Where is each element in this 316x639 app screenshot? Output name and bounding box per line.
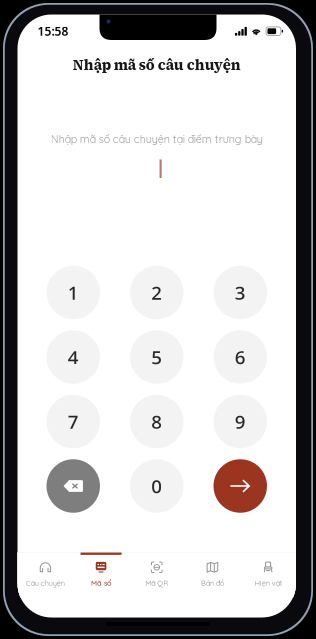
button[interactable]: 5: [130, 330, 183, 384]
button[interactable]: Hiện vật: [240, 552, 296, 597]
staticText: 1: [68, 280, 79, 305]
staticText: 0: [151, 473, 162, 499]
staticText: 2: [151, 280, 162, 305]
staticText: 5: [151, 344, 162, 370]
staticText: 9: [235, 409, 246, 434]
staticText: Mã số: [91, 578, 111, 588]
staticText: Nhập mã số câu chuyện tại điểm trưng bày: [51, 132, 263, 146]
button[interactable]: Xoá: [46, 459, 100, 513]
staticText: Hiện vật: [255, 578, 282, 588]
button[interactable]: 1: [46, 266, 100, 319]
button[interactable]: 6: [213, 330, 267, 384]
button[interactable]: Mã số: [73, 552, 129, 597]
staticText: 8: [151, 409, 162, 434]
staticText: Nhập mã số câu chuyện: [73, 55, 241, 75]
button[interactable]: 7: [46, 395, 100, 448]
staticText: 4: [68, 344, 79, 370]
button[interactable]: 4: [46, 330, 100, 384]
staticText: 3: [235, 280, 246, 305]
staticText: 6: [235, 344, 246, 370]
button[interactable]: Gửi mã: [213, 459, 267, 513]
button[interactable]: 3: [213, 266, 267, 319]
staticText: Câu chuyện: [26, 578, 65, 588]
button[interactable]: Mã QR: [129, 552, 185, 597]
button[interactable]: 8: [130, 395, 183, 448]
staticText: Bản đồ: [201, 578, 224, 588]
staticText: 7: [68, 409, 79, 434]
button[interactable]: 2: [130, 266, 183, 319]
staticText: 15:58: [38, 23, 69, 39]
button[interactable]: Bản đồ: [185, 552, 240, 597]
button[interactable]: Nhập mã số câu chuyện: [73, 55, 241, 75]
staticText: Mã QR: [145, 578, 168, 588]
button[interactable]: 0: [130, 459, 183, 513]
button[interactable]: Câu chuyện: [17, 552, 73, 597]
button[interactable]: 9: [213, 395, 267, 448]
